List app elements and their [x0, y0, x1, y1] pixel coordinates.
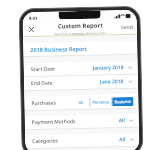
- button[interactable]: End Date: [24, 75, 138, 90]
- staticText: 2018 Business Report: [30, 45, 87, 53]
- button[interactable]: Business: [112, 97, 133, 106]
- staticText: Payment Methods: [32, 118, 76, 126]
- button[interactable]: Start Date: [24, 61, 138, 76]
- staticText: All: [119, 117, 125, 124]
- button[interactable]: Categories: [25, 133, 139, 148]
- button[interactable]: 2018 Business Report: [23, 41, 137, 56]
- staticText: Personal: [92, 99, 109, 105]
- staticText: 9:41: [29, 15, 38, 21]
- staticText: Send: [121, 24, 133, 31]
- staticText: Business: [114, 99, 131, 104]
- staticText: Start Date: [31, 65, 56, 73]
- staticText: Send to: a.member@xmas.com: [54, 30, 106, 36]
- staticText: All: [119, 136, 125, 143]
- button[interactable]: Personal: [90, 97, 111, 107]
- staticText: January 2018: [93, 64, 124, 72]
- staticText: All: [78, 100, 83, 105]
- staticText: Categories: [32, 137, 58, 145]
- button[interactable]: Send: [117, 21, 137, 34]
- button[interactable]: Close: [27, 25, 36, 34]
- staticText: End Date: [31, 80, 53, 87]
- button[interactable]: Payment Methods: [25, 114, 139, 129]
- staticText: June 2018: [100, 78, 124, 86]
- staticText: Purchases: [31, 99, 56, 107]
- button[interactable]: All: [71, 98, 89, 107]
- staticText: Custom Report: [58, 21, 103, 30]
